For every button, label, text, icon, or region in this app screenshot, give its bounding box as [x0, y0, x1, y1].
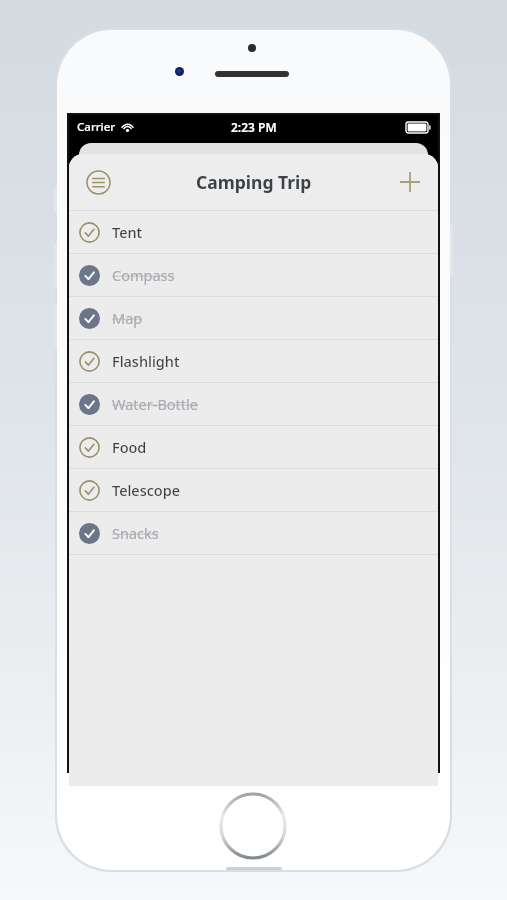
- staticText: 2:23 PM: [231, 119, 277, 135]
- button[interactable]: Food: [69, 426, 438, 468]
- staticText: Map: [112, 308, 143, 328]
- staticText: Tent: [112, 222, 143, 242]
- button[interactable]: Snacks: [69, 512, 438, 554]
- button[interactable]: Telescope: [69, 469, 438, 511]
- button[interactable]: Water-Bottle: [69, 383, 438, 425]
- staticText: Camping Trip: [196, 170, 312, 194]
- button[interactable]: Compass: [69, 254, 438, 296]
- staticText: Compass: [112, 265, 175, 285]
- staticText: Water-Bottle: [112, 394, 198, 414]
- staticText: Flashlight: [112, 351, 180, 371]
- button[interactable]: Menu: [78, 162, 118, 202]
- button[interactable]: Map: [69, 297, 438, 339]
- staticText: Food: [112, 437, 147, 457]
- staticText: Telescope: [112, 480, 181, 500]
- staticText: Carrier: [77, 119, 116, 135]
- button[interactable]: Flashlight: [69, 340, 438, 382]
- button[interactable]: Tent: [69, 211, 438, 253]
- button[interactable]: Add item: [390, 162, 430, 202]
- staticText: Snacks: [112, 523, 159, 543]
